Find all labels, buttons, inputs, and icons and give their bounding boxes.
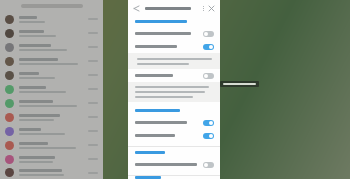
button[interactable]: Toggle off	[128, 158, 220, 171]
button[interactable]: Toggle off	[203, 31, 214, 37]
button[interactable]	[0, 82, 103, 96]
button[interactable]: Toggle off	[203, 162, 214, 168]
button[interactable]	[0, 110, 103, 124]
button[interactable]: Toggle on	[128, 40, 220, 53]
button[interactable]: Toggle on	[203, 133, 214, 139]
button[interactable]: Toggle off	[128, 27, 220, 40]
button[interactable]	[0, 138, 103, 152]
button[interactable]	[0, 68, 103, 82]
button[interactable]: Toggle off	[128, 69, 220, 82]
button[interactable]	[220, 81, 259, 87]
button[interactable]: Back	[132, 4, 141, 13]
button[interactable]: More options	[199, 4, 207, 12]
button[interactable]	[0, 12, 103, 26]
button[interactable]	[0, 96, 103, 110]
button[interactable]	[0, 152, 103, 166]
button[interactable]	[0, 54, 103, 68]
button[interactable]: Toggle on	[203, 44, 214, 50]
button[interactable]: Toggle on	[128, 116, 220, 129]
button[interactable]	[0, 166, 103, 179]
button[interactable]: Toggle on	[203, 120, 214, 126]
button[interactable]	[0, 40, 103, 54]
button[interactable]: Toggle on	[128, 129, 220, 142]
button[interactable]: Toggle off	[203, 73, 214, 79]
button[interactable]: Close	[207, 4, 216, 13]
button[interactable]	[0, 26, 103, 40]
button[interactable]	[0, 124, 103, 138]
